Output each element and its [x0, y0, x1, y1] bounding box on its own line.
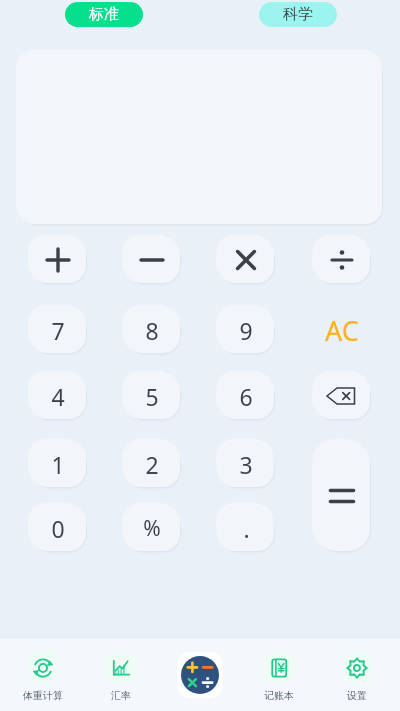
staticText: 4	[51, 381, 65, 412]
button[interactable]: 科学	[259, 2, 337, 27]
staticText: 2	[145, 449, 159, 480]
staticText: 8	[145, 315, 159, 346]
button[interactable]: %	[124, 505, 180, 551]
button[interactable]: 记账本	[243, 651, 315, 702]
staticText: 3	[239, 449, 253, 480]
button[interactable]: Minus	[124, 237, 180, 283]
staticText: 标准	[89, 5, 119, 24]
staticText: 科学	[283, 5, 313, 24]
button[interactable]: Plus	[30, 237, 86, 283]
button[interactable]: 体重计算	[7, 651, 79, 702]
staticText: 6	[239, 381, 253, 412]
button[interactable]: 8	[124, 307, 180, 353]
staticText: 7	[51, 315, 65, 346]
button[interactable]: Divide	[314, 237, 370, 283]
button[interactable]: 3	[218, 441, 274, 487]
button[interactable]: 6	[218, 373, 274, 419]
staticText: 0	[51, 513, 65, 544]
staticText: 汇率	[111, 689, 131, 702]
staticText: 体重计算	[23, 689, 63, 702]
button[interactable]: Multiply	[218, 237, 274, 283]
button[interactable]: Equals	[314, 441, 370, 551]
staticText: 1	[51, 449, 65, 480]
button[interactable]: Backspace	[314, 373, 370, 419]
button[interactable]: 7	[30, 307, 86, 353]
button[interactable]: 设置	[321, 651, 393, 702]
button[interactable]: 5	[124, 373, 180, 419]
staticText: 设置	[347, 689, 367, 702]
button[interactable]: 0	[30, 505, 86, 551]
button[interactable]: Calculator	[164, 652, 236, 698]
button[interactable]: .	[218, 505, 274, 551]
button[interactable]: 2	[124, 441, 180, 487]
staticText: 记账本	[264, 689, 294, 702]
button[interactable]: 9	[218, 307, 274, 353]
button[interactable]: 4	[30, 373, 86, 419]
staticText: 9	[239, 315, 253, 346]
staticText: AC	[325, 312, 359, 349]
staticText: 5	[145, 381, 159, 412]
staticText: .	[243, 513, 250, 544]
button[interactable]: 汇率	[85, 651, 157, 702]
button[interactable]: AC	[314, 307, 370, 353]
button[interactable]: 标准	[65, 2, 143, 27]
staticText: %	[143, 514, 161, 543]
button[interactable]: 1	[30, 441, 86, 487]
